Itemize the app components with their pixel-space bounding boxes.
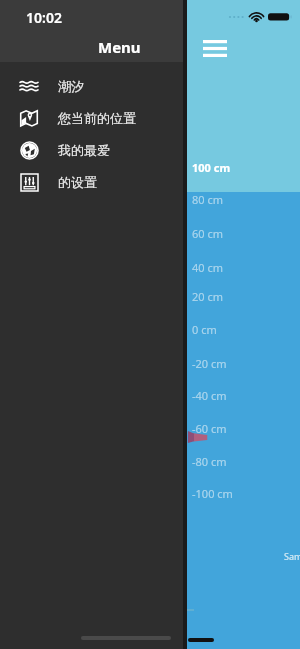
button[interactable]: 您当前的位置 <box>0 102 187 134</box>
staticText: Sam <box>284 550 300 562</box>
staticText: 的设置 <box>58 174 97 190</box>
staticText: 您当前的位置 <box>58 110 136 126</box>
staticText: 80 cm <box>192 192 224 207</box>
staticText: 60 cm <box>192 226 224 241</box>
staticText: -60 cm <box>192 421 227 436</box>
staticText: -100 cm <box>192 486 233 501</box>
staticText: 潮汐 <box>58 78 84 94</box>
button[interactable]: Menu <box>196 33 234 63</box>
button[interactable]: 的设置 <box>0 166 187 198</box>
staticText: -80 cm <box>192 454 227 469</box>
staticText: 我的最爱 <box>58 142 110 158</box>
button[interactable]: 潮汐 <box>0 70 187 102</box>
staticText: 20 cm <box>192 289 224 304</box>
staticText: 40 cm <box>192 260 224 275</box>
staticText: -40 cm <box>192 388 227 403</box>
staticText: 0 cm <box>192 322 217 337</box>
button[interactable]: 我的最爱 <box>0 134 187 166</box>
staticText: 10:02 <box>26 8 62 27</box>
staticText: 100 cm <box>192 160 231 175</box>
staticText: Menu <box>98 37 141 57</box>
staticText: -20 cm <box>192 356 227 371</box>
